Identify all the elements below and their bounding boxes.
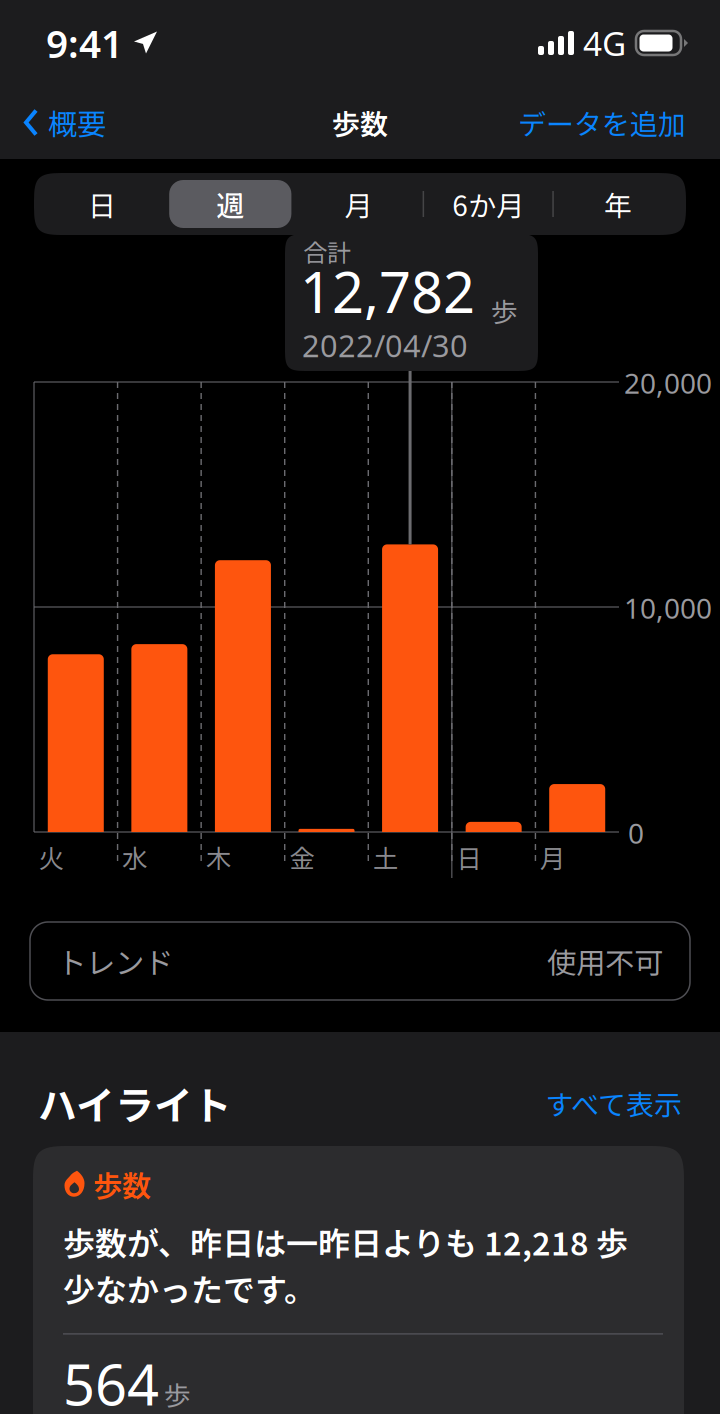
staticText: 月: [344, 184, 372, 224]
staticText: データを追加: [518, 102, 686, 143]
staticText: 月: [540, 839, 565, 875]
staticText: 火: [38, 839, 63, 875]
staticText: 木: [206, 839, 231, 875]
staticText: 週: [216, 184, 244, 224]
staticText: 概要: [48, 101, 106, 144]
staticText: 水: [122, 839, 147, 875]
staticText: 土: [373, 839, 398, 875]
button[interactable]: 概要: [0, 91, 106, 154]
staticText: 合計: [303, 234, 351, 269]
staticText: 4G: [583, 21, 626, 65]
staticText: 日: [456, 839, 481, 875]
button[interactable]: すべて表示: [545, 1083, 682, 1123]
staticText: トレンド: [57, 940, 173, 982]
staticText: 564: [63, 1347, 159, 1414]
button[interactable]: 年: [554, 177, 682, 231]
staticText: 使用不可: [547, 940, 663, 982]
button[interactable]: トレンド: [30, 922, 690, 1000]
button[interactable]: 月: [294, 177, 423, 231]
staticText: 0: [628, 814, 644, 852]
staticText: 歩: [164, 1375, 191, 1413]
staticText: 2022/04/30: [302, 325, 468, 366]
staticText: 6か月: [452, 184, 524, 224]
staticText: 歩数が、昨日は一昨日よりも 12,218 歩少なかったです。: [63, 1218, 628, 1311]
button[interactable]: 週: [166, 177, 294, 231]
staticText: 20,000: [624, 364, 712, 402]
staticText: 日: [88, 184, 116, 224]
staticText: 10,000: [624, 589, 712, 627]
staticText: ハイライト: [38, 1075, 232, 1131]
button[interactable]: 6か月: [424, 177, 552, 231]
staticText: すべて表示: [545, 1083, 682, 1123]
staticText: 歩数: [93, 1163, 151, 1205]
staticText: 歩: [491, 291, 518, 330]
staticText: 金: [289, 839, 314, 875]
staticText: 歩数: [332, 102, 388, 143]
staticText: 9:41: [46, 17, 123, 69]
staticText: 年: [604, 184, 632, 224]
button[interactable]: データを追加: [518, 92, 720, 153]
staticText: 12,782: [300, 254, 475, 328]
button[interactable]: 日: [38, 177, 166, 231]
